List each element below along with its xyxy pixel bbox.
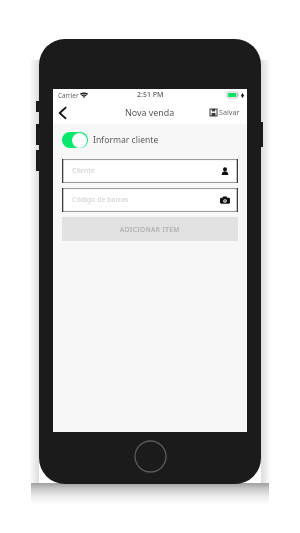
staticText: ADICIONAR ITEM	[120, 225, 180, 234]
staticText: Carrier	[58, 91, 79, 100]
staticText: 2:51 PM	[137, 90, 164, 100]
button[interactable]: Salvar	[210, 107, 240, 117]
button[interactable]: Informar cliente	[62, 132, 247, 148]
button[interactable]: Back	[55, 104, 69, 122]
staticText: Código de barras	[72, 195, 129, 205]
button[interactable]: Cliente	[62, 159, 238, 183]
staticText: Informar cliente	[93, 134, 159, 146]
staticText: Cliente	[72, 166, 95, 176]
button[interactable]: ADICIONAR ITEM	[62, 217, 238, 241]
button[interactable]: Código de barras	[62, 188, 238, 212]
staticText: Salvar	[219, 107, 240, 117]
staticText: Nova venda	[125, 106, 175, 118]
